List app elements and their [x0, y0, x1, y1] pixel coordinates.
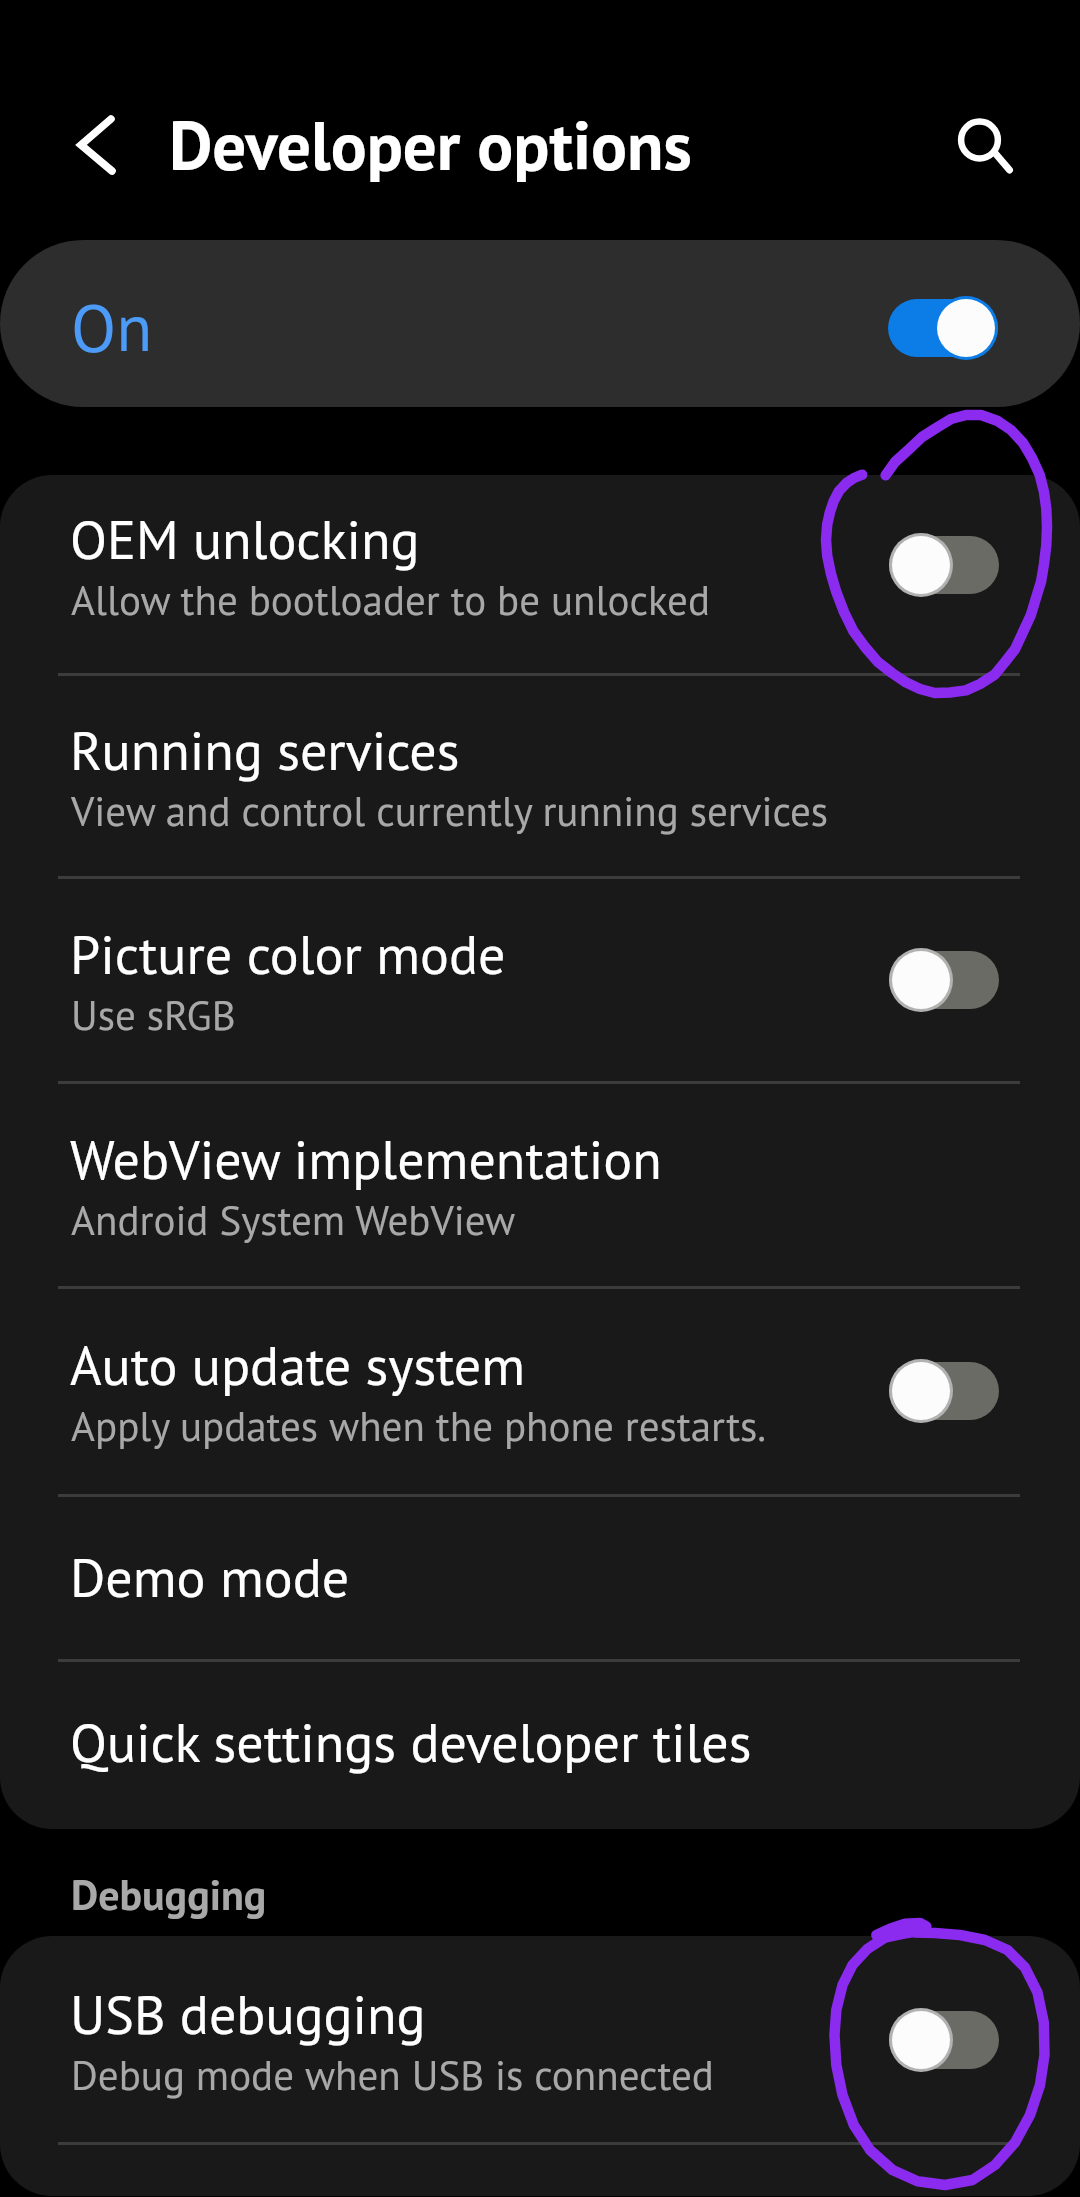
- button[interactable]: [0, 1287, 1080, 1495]
- button[interactable]: Search: [930, 88, 1044, 202]
- button[interactable]: [0, 1660, 1080, 1829]
- button[interactable]: Navigate up: [34, 86, 154, 206]
- staticText: Picture color mode: [70, 919, 506, 989]
- button[interactable]: On: [0, 240, 1080, 407]
- button[interactable]: Switch off: [889, 1358, 999, 1424]
- staticText: Use sRGB: [71, 988, 236, 1041]
- button[interactable]: [0, 877, 1080, 1082]
- button[interactable]: Switch off: [889, 532, 999, 598]
- button[interactable]: [0, 2143, 1080, 2197]
- staticText: Quick settings developer tiles: [70, 1707, 752, 1777]
- button[interactable]: [0, 1936, 1080, 2143]
- button[interactable]: Switch off: [889, 947, 999, 1013]
- staticText: OEM unlocking: [70, 504, 420, 574]
- staticText: WebView implementation: [70, 1124, 662, 1194]
- staticText: View and control currently running servi…: [71, 784, 829, 837]
- staticText: Allow the bootloader to be unlocked: [71, 573, 710, 626]
- button[interactable]: [0, 475, 1080, 674]
- button[interactable]: [0, 1495, 1080, 1660]
- staticText: Apply updates when the phone restarts.: [71, 1399, 767, 1452]
- staticText: USB debugging: [70, 1979, 426, 2049]
- staticText: Developer options: [169, 102, 692, 182]
- staticText: Running services: [70, 715, 460, 785]
- staticText: Demo mode: [70, 1542, 350, 1612]
- button[interactable]: Developer options: [169, 102, 692, 182]
- staticText: Debug mode when USB is connected: [71, 2048, 714, 2101]
- staticText: On: [71, 284, 153, 369]
- staticText: Auto update system: [70, 1330, 526, 1400]
- staticText: Debugging: [71, 1867, 267, 1921]
- button[interactable]: [0, 674, 1080, 877]
- staticText: Android System WebView: [71, 1193, 516, 1246]
- button[interactable]: Switch off: [889, 2007, 999, 2073]
- button[interactable]: Switch on: [888, 295, 998, 361]
- button[interactable]: [0, 1082, 1080, 1287]
